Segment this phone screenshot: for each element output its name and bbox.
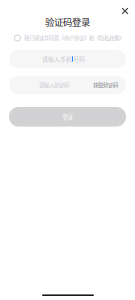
button[interactable]: 登录 bbox=[9, 107, 126, 127]
button[interactable]: Close bbox=[117, 3, 133, 19]
staticText: 验证码登录 bbox=[45, 15, 90, 28]
button[interactable]: 我已阅读并同意《用户协议》和《隐私政策》 bbox=[14, 33, 129, 43]
staticText: 登录 bbox=[62, 113, 72, 121]
staticText: 我已阅读并同意《用户协议》和《隐私政策》 bbox=[24, 34, 124, 42]
staticText: 请输入手机 bbox=[42, 55, 72, 63]
staticText: 请输入验证码 bbox=[39, 81, 69, 89]
button[interactable]: 获取验证码 bbox=[93, 76, 126, 94]
staticText: 获取验证码 bbox=[93, 81, 118, 89]
staticText: 号码 bbox=[73, 55, 85, 63]
